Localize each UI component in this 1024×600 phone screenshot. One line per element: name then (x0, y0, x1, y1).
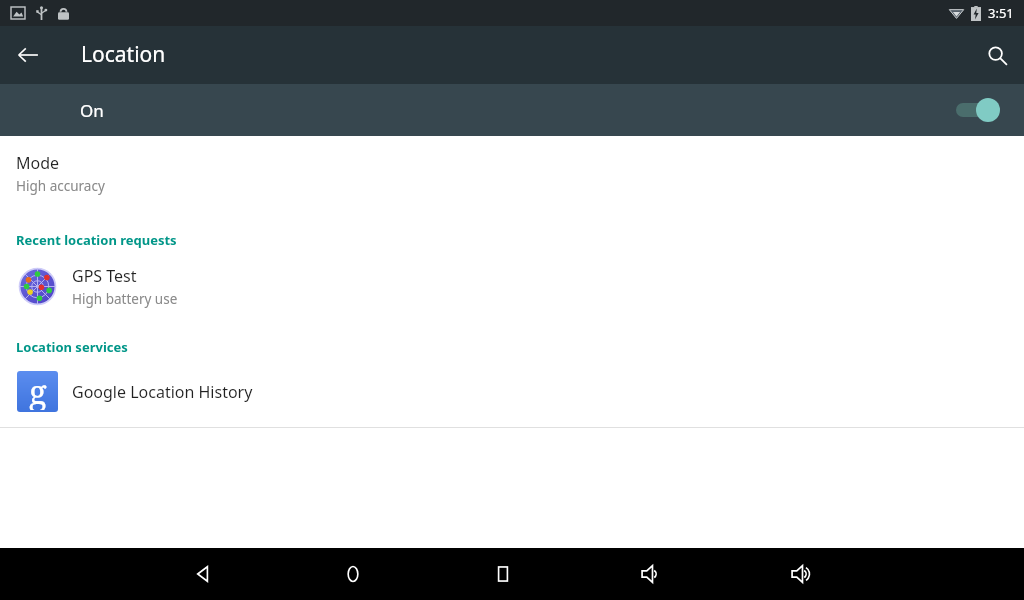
button[interactable]: Volume down (628, 548, 678, 600)
staticText: Location services (16, 338, 128, 356)
button[interactable]: Home (328, 548, 378, 600)
staticText: High battery use (72, 290, 178, 308)
button[interactable]: GPS Test (0, 261, 1024, 314)
staticText: Google Location History (72, 381, 253, 403)
button[interactable]: Back (178, 548, 228, 600)
button[interactable]: Volume up (778, 548, 828, 600)
button[interactable]: Search (974, 32, 1020, 78)
button[interactable]: On (0, 84, 1024, 136)
staticText: Location (81, 40, 166, 69)
staticText: Mode (16, 152, 60, 174)
staticText: 3:51 (988, 4, 1014, 22)
staticText: On (80, 99, 104, 122)
staticText: Recent location requests (16, 231, 177, 249)
staticText: GPS Test (72, 265, 137, 287)
button[interactable]: Mode (0, 136, 1024, 209)
button[interactable]: Back (6, 33, 50, 77)
button[interactable]: g (0, 366, 1024, 419)
staticText: g (29, 371, 47, 410)
staticText: High accuracy (16, 177, 105, 195)
button[interactable]: Recent apps (478, 548, 528, 600)
